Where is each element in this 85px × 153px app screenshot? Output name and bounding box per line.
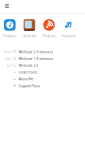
button[interactable]: Nov 20 <box>1 48 85 55</box>
staticText: Sep 18 <box>5 56 16 61</box>
staticText: About Me <box>18 77 33 81</box>
staticText: WinSuite 2.8 <box>18 63 38 68</box>
button[interactable]: Sep 18 <box>1 55 85 62</box>
button[interactable]: Home <box>5 4 9 8</box>
staticText: Older Posts <box>18 70 37 75</box>
staticText: → <box>13 70 16 74</box>
staticText: ★ <box>13 77 16 81</box>
button[interactable]: Jul 15 <box>1 62 85 69</box>
staticText: Jul 15 <box>7 63 16 68</box>
button[interactable]: → <box>1 69 85 76</box>
staticText: WinSuite 2.9 released <box>18 49 53 54</box>
staticText: WinSuite 1.8 released <box>18 56 53 61</box>
button[interactable]: Podcast <box>39 19 59 38</box>
button[interactable]: ♥ <box>1 82 85 89</box>
staticText: Podcast <box>42 33 55 38</box>
button[interactable]: ★ <box>1 76 85 82</box>
staticText: VinSuite <box>23 33 36 38</box>
staticText: ♥ <box>13 84 16 88</box>
staticText: Nov 20 <box>4 49 16 54</box>
button[interactable]: VinSuite <box>20 19 39 38</box>
staticText: Feature <box>3 33 16 38</box>
staticText: Huetune <box>62 33 76 38</box>
staticText: Support Parus <box>18 83 40 88</box>
button[interactable]: Huetune <box>59 19 78 38</box>
button[interactable]: Feature <box>0 19 20 38</box>
